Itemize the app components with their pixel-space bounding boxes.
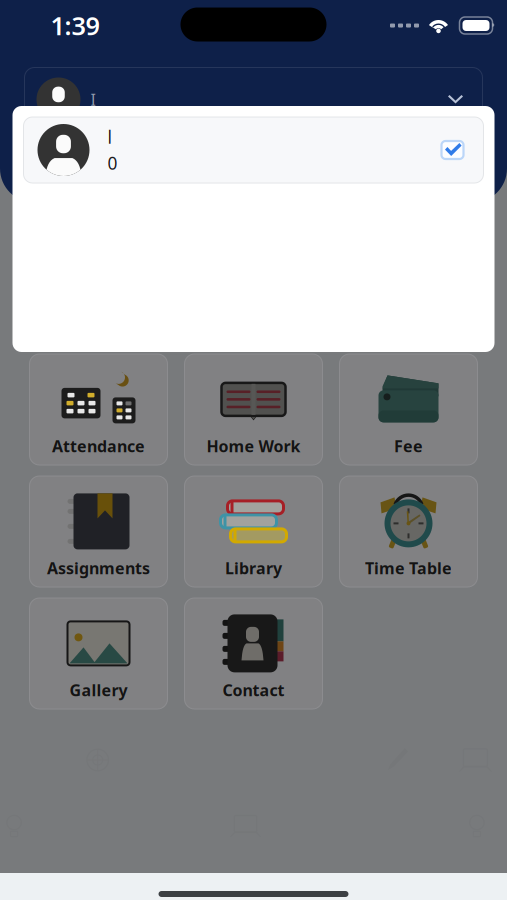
staticText: Library — [225, 557, 282, 579]
button[interactable]: l — [23, 117, 483, 183]
button[interactable]: Time Table — [339, 476, 477, 587]
staticText: 1:39 — [50, 9, 99, 42]
staticText: Assignments — [47, 557, 150, 579]
staticText: Gallery — [69, 679, 127, 701]
staticText: Fee — [394, 435, 423, 457]
button[interactable]: Home Work — [184, 354, 322, 465]
button[interactable]: Gallery — [29, 598, 167, 709]
staticText: Attendance — [52, 435, 145, 457]
button[interactable]: Contact — [184, 598, 322, 709]
staticText: I — [90, 89, 95, 110]
staticText: Time Table — [365, 557, 452, 579]
staticText: Contact — [222, 679, 284, 701]
staticText: l — [107, 125, 111, 148]
button[interactable]: Assignments — [29, 476, 167, 587]
button[interactable]: Fee — [339, 354, 477, 465]
staticText: Home Work — [206, 435, 300, 457]
button[interactable]: Library — [184, 476, 322, 587]
button[interactable]: Attendance — [29, 354, 167, 465]
staticText: 0 — [107, 151, 117, 174]
